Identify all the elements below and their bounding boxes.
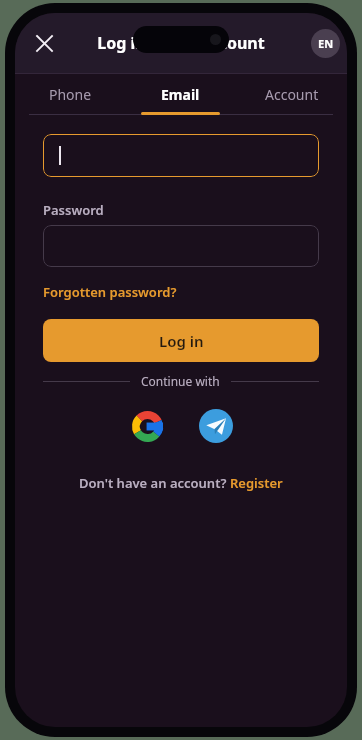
button[interactable]: Log in: [43, 319, 319, 362]
button[interactable]: Account: [236, 74, 347, 115]
staticText: Log in: [159, 331, 204, 351]
staticText: Don't have an account?: [79, 474, 230, 492]
button[interactable]: Forgotten password?: [43, 283, 177, 301]
button[interactable]: Register: [230, 474, 283, 492]
staticText: Password: [43, 201, 104, 219]
button[interactable]: Continue with Telegram: [194, 404, 238, 448]
staticText: Continue with: [141, 373, 220, 389]
button[interactable]: Close: [26, 25, 62, 61]
button[interactable]: EN: [311, 29, 340, 58]
button[interactable]: [43, 225, 319, 267]
staticText: Log in to My Account: [97, 32, 265, 54]
staticText: Email: [161, 85, 200, 104]
button[interactable]: Continue with Google: [125, 404, 169, 448]
button[interactable]: Phone: [15, 74, 125, 115]
staticText: EN: [318, 36, 334, 51]
staticText: Account: [265, 85, 319, 104]
button[interactable]: Email: [125, 74, 236, 115]
button[interactable]: [43, 134, 319, 177]
staticText: Phone: [49, 85, 92, 104]
staticText: Forgotten password?: [43, 283, 177, 301]
staticText: Register: [230, 474, 283, 492]
